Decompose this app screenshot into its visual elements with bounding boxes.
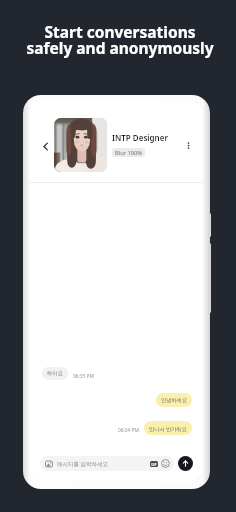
button[interactable]: 안녕하세요 [156,393,192,407]
button[interactable]: 메시지를 입력하세요 [40,456,174,471]
staticText: 06:35 PM [73,373,94,380]
button[interactable]: Send [178,456,193,471]
staticText: INTP Designer [112,132,168,143]
staticText: Blur 100% [115,149,142,157]
staticText: 06:34 PM [118,427,139,434]
staticText: 안녕하세요 [161,397,187,404]
staticText: Start conversations safely and anonymous… [26,21,214,59]
button[interactable]: 하이요 [42,367,68,380]
button[interactable]: Back [37,138,54,155]
button[interactable]: 만나서 반가워요 [144,421,192,435]
button[interactable]: Profile photo [54,118,107,172]
button[interactable]: More options [181,138,196,153]
staticText: 만나서 반가워요 [149,425,187,432]
staticText: GIF [151,462,157,467]
staticText: 메시지를 입력하세요 [57,460,108,468]
staticText: 하이요 [47,370,63,377]
